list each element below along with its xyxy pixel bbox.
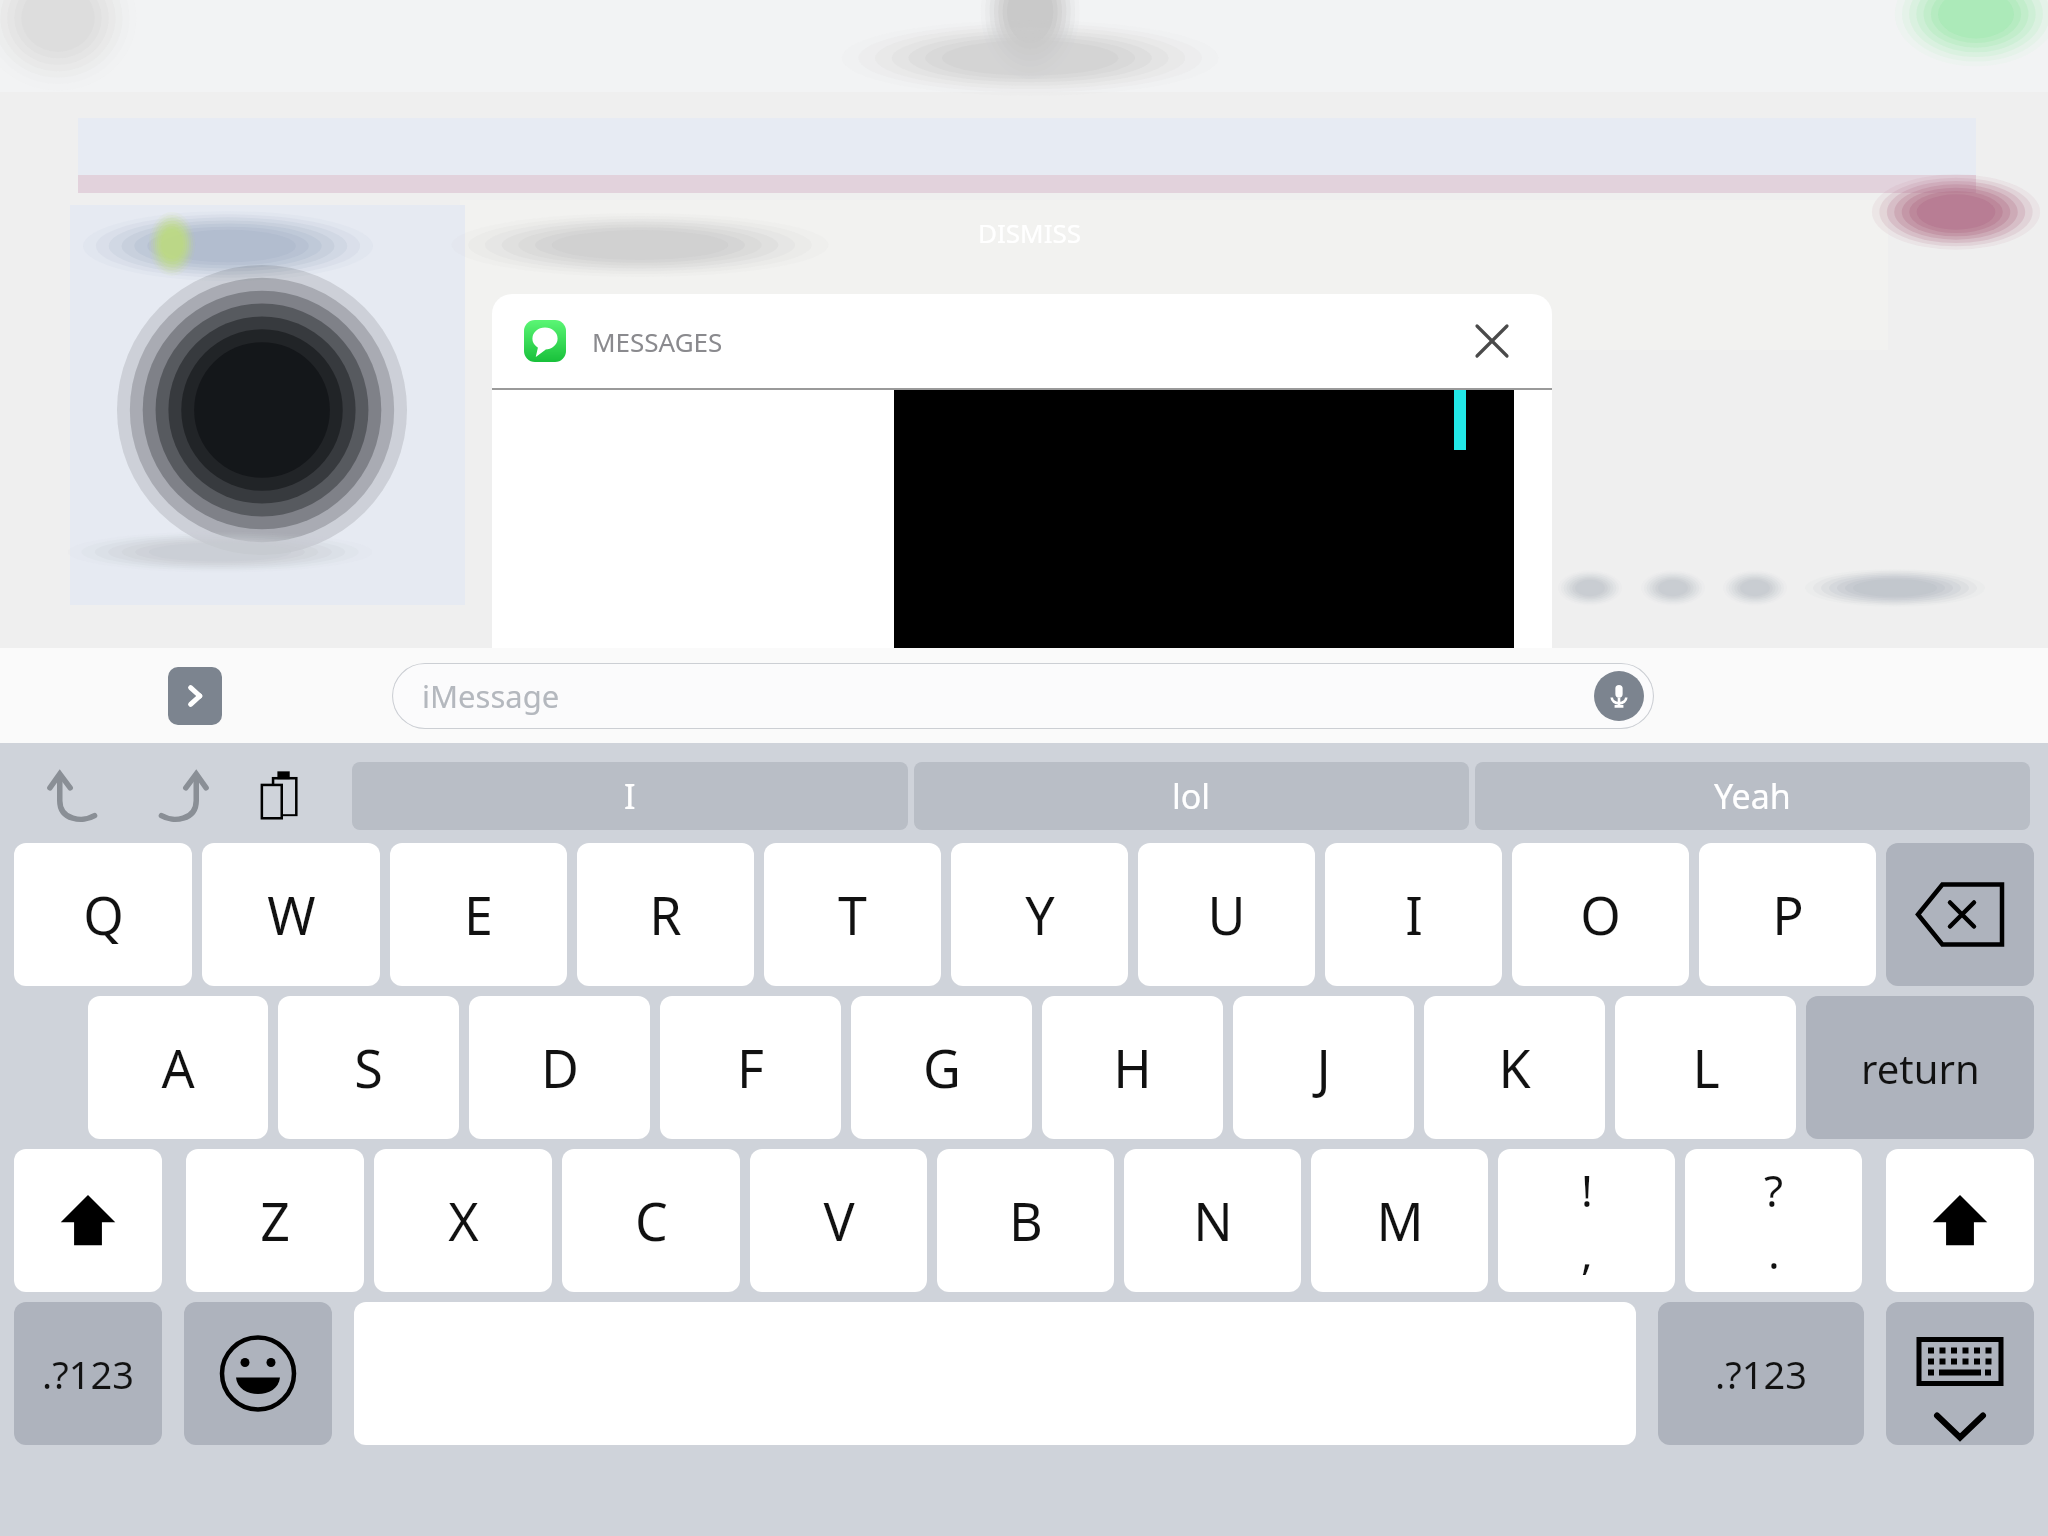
button[interactable]: P bbox=[1699, 843, 1876, 986]
staticText: .?123 bbox=[1715, 1348, 1807, 1400]
button[interactable]: Q bbox=[14, 843, 192, 986]
button[interactable]: return bbox=[1806, 996, 2034, 1139]
button[interactable]: J bbox=[1233, 996, 1414, 1139]
button[interactable]: Backspace bbox=[1886, 843, 2034, 986]
button[interactable]: U bbox=[1138, 843, 1315, 986]
staticText: J bbox=[1316, 1032, 1331, 1103]
staticText: I bbox=[624, 773, 636, 819]
staticText: C bbox=[635, 1185, 668, 1256]
staticText: lol bbox=[1172, 773, 1211, 819]
staticText: U bbox=[1207, 879, 1246, 950]
button[interactable]: I bbox=[1325, 843, 1502, 986]
button[interactable]: F bbox=[660, 996, 841, 1139]
staticText: D bbox=[541, 1032, 579, 1103]
button[interactable]: B bbox=[937, 1149, 1114, 1292]
staticText: Y bbox=[1025, 879, 1055, 950]
staticText: . bbox=[1768, 1222, 1780, 1282]
staticText: K bbox=[1498, 1032, 1531, 1103]
staticText: X bbox=[448, 1185, 479, 1256]
button[interactable]: Show apps bbox=[168, 667, 222, 725]
button[interactable]: iMessage bbox=[392, 663, 1654, 729]
staticText: iMessage bbox=[422, 675, 560, 717]
button[interactable]: Z bbox=[186, 1149, 364, 1292]
button[interactable]: .?123 bbox=[14, 1302, 162, 1445]
staticText: .?123 bbox=[42, 1348, 134, 1400]
button[interactable]: R bbox=[577, 843, 754, 986]
staticText: R bbox=[649, 879, 682, 950]
button[interactable]: S bbox=[278, 996, 459, 1139]
button[interactable]: V bbox=[750, 1149, 927, 1292]
button[interactable]: X bbox=[374, 1149, 552, 1292]
staticText: G bbox=[923, 1032, 961, 1103]
staticText: T bbox=[838, 879, 867, 950]
button[interactable]: Y bbox=[951, 843, 1128, 986]
staticText: Q bbox=[83, 879, 124, 950]
staticText: , bbox=[1581, 1222, 1593, 1282]
button[interactable]: N bbox=[1124, 1149, 1301, 1292]
staticText: ? bbox=[1764, 1160, 1784, 1220]
staticText: S bbox=[354, 1032, 383, 1103]
staticText: B bbox=[1009, 1185, 1043, 1256]
staticText: A bbox=[161, 1032, 195, 1103]
button[interactable]: ? bbox=[1685, 1149, 1862, 1292]
staticText: Yeah bbox=[1714, 773, 1791, 819]
button[interactable]: O bbox=[1512, 843, 1689, 986]
staticText: O bbox=[1580, 879, 1621, 950]
button[interactable]: Dictate bbox=[1594, 671, 1644, 721]
staticText: V bbox=[823, 1185, 855, 1256]
button[interactable]: Close notification bbox=[1464, 313, 1520, 369]
button[interactable]: Redo bbox=[144, 760, 216, 832]
button[interactable]: Undo bbox=[40, 760, 112, 832]
staticText: M bbox=[1376, 1185, 1424, 1256]
staticText: I bbox=[1405, 879, 1423, 950]
button[interactable]: Shift right bbox=[1886, 1149, 2034, 1292]
staticText: P bbox=[1772, 879, 1804, 950]
button[interactable]: Yeah bbox=[1475, 762, 2030, 830]
staticText: MESSAGES bbox=[592, 324, 723, 359]
staticText: L bbox=[1692, 1032, 1720, 1103]
button[interactable]: T bbox=[764, 843, 941, 986]
button[interactable]: lol bbox=[914, 762, 1469, 830]
staticText: F bbox=[737, 1032, 764, 1103]
button[interactable]: L bbox=[1615, 996, 1796, 1139]
button[interactable]: G bbox=[851, 996, 1032, 1139]
button[interactable]: Paste bbox=[248, 761, 318, 831]
staticText: DISMISS bbox=[978, 215, 1082, 250]
button[interactable]: Shift bbox=[14, 1149, 162, 1292]
button[interactable]: Hide keyboard bbox=[1886, 1302, 2034, 1445]
button[interactable]: M bbox=[1311, 1149, 1488, 1292]
staticText: return bbox=[1861, 1041, 1980, 1095]
button[interactable]: D bbox=[469, 996, 650, 1139]
staticText: E bbox=[464, 879, 493, 950]
button[interactable]: W bbox=[202, 843, 380, 986]
button[interactable]: I bbox=[352, 762, 908, 830]
staticText: N bbox=[1193, 1185, 1233, 1256]
button[interactable]: A bbox=[88, 996, 268, 1139]
button[interactable]: E bbox=[390, 843, 567, 986]
staticText: Z bbox=[260, 1185, 290, 1256]
button[interactable]: C bbox=[562, 1149, 740, 1292]
staticText: H bbox=[1113, 1032, 1152, 1103]
button[interactable]: H bbox=[1042, 996, 1223, 1139]
button[interactable]: .?123 bbox=[1658, 1302, 1864, 1445]
button[interactable]: ! bbox=[1498, 1149, 1675, 1292]
staticText: W bbox=[267, 879, 316, 950]
button[interactable]: Emoji bbox=[184, 1302, 332, 1445]
staticText: ! bbox=[1581, 1160, 1593, 1220]
button[interactable]: K bbox=[1424, 996, 1605, 1139]
